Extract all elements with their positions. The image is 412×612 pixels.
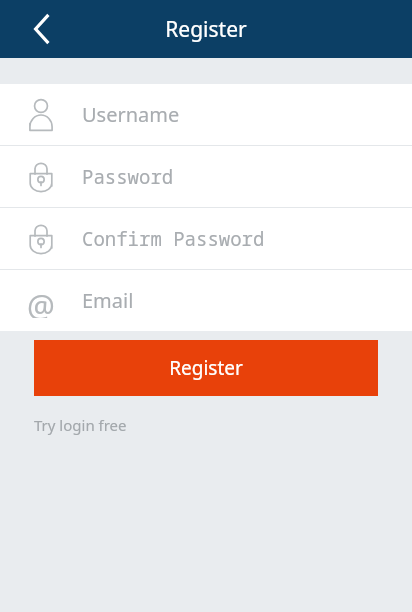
staticText: @ <box>27 284 55 318</box>
button[interactable]: Try login free <box>32 412 129 438</box>
button[interactable]: Confirm Password <box>0 208 412 269</box>
button[interactable]: Username <box>0 84 412 145</box>
staticText: Register <box>165 15 247 44</box>
button[interactable]: Password <box>0 146 412 207</box>
staticText: Register <box>169 355 243 381</box>
button[interactable]: Register <box>34 340 378 396</box>
staticText: Try login free <box>34 415 127 435</box>
staticText: Confirm Password <box>82 226 265 252</box>
staticText: Email <box>82 287 134 314</box>
staticText: Password <box>82 164 174 190</box>
button[interactable]: @ <box>0 270 412 331</box>
staticText: Username <box>82 101 180 128</box>
button[interactable]: Back <box>18 5 66 53</box>
